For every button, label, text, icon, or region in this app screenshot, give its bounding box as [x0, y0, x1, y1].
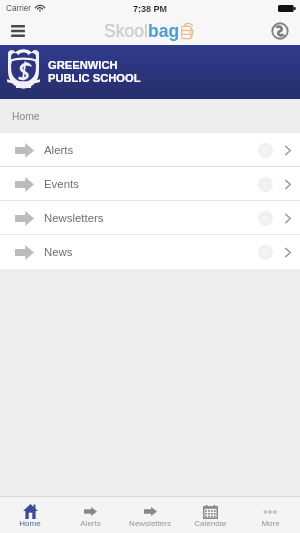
staticText: Newsletters	[44, 212, 104, 225]
staticText: Skool	[104, 21, 148, 41]
button[interactable]: More	[240, 497, 300, 533]
button[interactable]: Menu	[0, 19, 36, 45]
staticText: Home	[12, 111, 40, 123]
staticText: Alerts	[44, 144, 74, 157]
staticText: Events	[44, 178, 79, 191]
staticText: Calendar	[194, 519, 227, 528]
button[interactable]: News	[0, 235, 300, 269]
button[interactable]: Alerts	[60, 497, 120, 533]
staticText: More	[261, 519, 280, 528]
staticText: GREENWICH	[48, 59, 118, 72]
staticText: Newsletters	[129, 519, 171, 528]
staticText: Alerts	[80, 519, 101, 528]
staticText: bag	[148, 21, 180, 41]
button[interactable]: Alerts	[0, 133, 300, 167]
button[interactable]: Newsletters	[120, 497, 180, 533]
button[interactable]: Newsletters	[0, 201, 300, 235]
button[interactable]: Events	[0, 167, 300, 201]
staticText: News	[44, 246, 73, 259]
staticText: Home	[19, 519, 41, 528]
button[interactable]: Calendar	[180, 497, 240, 533]
button[interactable]: Home	[0, 497, 60, 533]
button[interactable]: Refresh	[260, 19, 300, 45]
staticText: PUBLIC SCHOOL	[48, 72, 141, 85]
staticText: Carrier	[6, 4, 32, 13]
staticText: 7:38 PM	[133, 4, 168, 14]
